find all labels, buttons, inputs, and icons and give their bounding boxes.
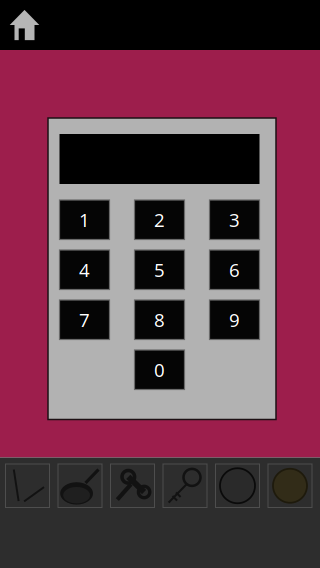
staticText: 8 [154,307,165,332]
button[interactable]: Winding key [110,464,154,507]
button[interactable]: Home [0,0,49,50]
button[interactable]: 0 [134,350,184,389]
button[interactable]: 6 [209,250,259,289]
staticText: 3 [229,207,240,232]
button[interactable]: 9 [209,300,259,339]
button[interactable]: 7 [59,300,109,339]
button[interactable]: Key [163,464,207,507]
staticText: 7 [79,307,90,332]
staticText: 6 [229,257,240,282]
button[interactable]: 8 [134,300,184,339]
button[interactable]: 5 [134,250,184,289]
button[interactable]: Frying pan [58,464,102,507]
button[interactable]: Gold coin [268,464,312,507]
staticText: 5 [154,257,165,282]
staticText: 4 [79,257,90,282]
button[interactable]: Stone [215,464,259,507]
button[interactable]: Two sticks [5,464,49,507]
staticText: 1 [79,207,90,232]
staticText: 0 [154,357,165,382]
button[interactable]: 1 [59,200,109,239]
button[interactable]: 2 [134,200,184,239]
button[interactable]: 3 [209,200,259,239]
staticText: 9 [229,307,240,332]
button[interactable]: 4 [59,250,109,289]
staticText: 2 [154,207,165,232]
